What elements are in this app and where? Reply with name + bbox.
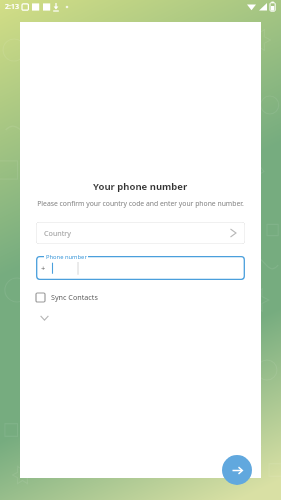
staticText: Please confirm your country code and ent… [28, 199, 253, 208]
staticText: Sync Contacts [51, 292, 98, 302]
button[interactable]: Sync Contacts [36, 290, 245, 304]
button[interactable]: Country [36, 222, 245, 244]
staticText: + [41, 263, 46, 273]
staticText: Country [44, 228, 72, 238]
button[interactable]: Phone number [36, 256, 245, 280]
staticText: Phone number [46, 253, 87, 261]
button[interactable]: Expand [36, 310, 52, 326]
button[interactable]: Next [222, 455, 252, 485]
staticText: 2:13 [5, 2, 19, 12]
staticText: Your phone number [93, 180, 188, 193]
